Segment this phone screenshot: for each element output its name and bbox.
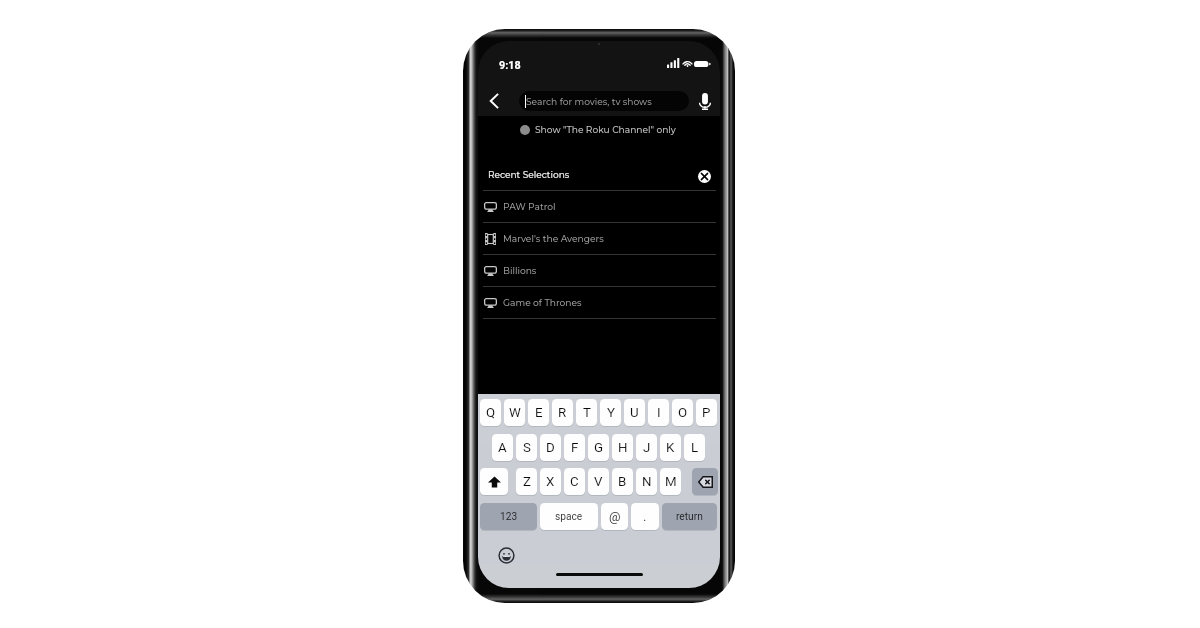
- staticText: Show "The Roku Channel" only: [535, 124, 676, 135]
- button[interactable]: M: [660, 468, 681, 495]
- staticText: Recent Selections: [488, 169, 570, 180]
- staticText: Y: [607, 405, 615, 421]
- button[interactable]: J: [636, 434, 657, 461]
- button[interactable]: L: [684, 434, 705, 461]
- button[interactable]: Marvel's the Avengers: [478, 223, 720, 254]
- staticText: 123: [500, 511, 518, 523]
- button[interactable]: O: [672, 399, 693, 426]
- button[interactable]: Back: [484, 91, 504, 111]
- button[interactable]: Shift: [480, 468, 508, 495]
- staticText: K: [666, 440, 675, 456]
- staticText: E: [535, 405, 543, 421]
- button[interactable]: @: [601, 503, 628, 530]
- button[interactable]: B: [612, 468, 633, 495]
- staticText: M: [665, 474, 677, 490]
- staticText: X: [546, 474, 555, 490]
- staticText: PAW Patrol: [503, 201, 556, 212]
- staticText: Z: [523, 474, 531, 490]
- staticText: C: [570, 474, 579, 490]
- button[interactable]: E: [528, 399, 549, 426]
- button[interactable]: U: [624, 399, 645, 426]
- staticText: V: [594, 474, 603, 490]
- staticText: T: [583, 405, 591, 421]
- button[interactable]: Z: [516, 468, 537, 495]
- button[interactable]: I: [648, 399, 669, 426]
- button[interactable]: Voice search: [695, 91, 715, 111]
- button[interactable]: 123: [480, 503, 537, 530]
- button[interactable]: V: [588, 468, 609, 495]
- button[interactable]: Billions: [478, 255, 720, 286]
- staticText: Game of Thrones: [503, 297, 582, 308]
- button[interactable]: H: [612, 434, 633, 461]
- button[interactable]: F: [564, 434, 585, 461]
- staticText: I: [657, 405, 661, 421]
- button[interactable]: .: [631, 503, 659, 530]
- button[interactable]: Q: [480, 399, 501, 426]
- button[interactable]: return: [662, 503, 717, 530]
- staticText: O: [678, 405, 688, 421]
- button[interactable]: Game of Thrones: [478, 287, 720, 318]
- button[interactable]: Show "The Roku Channel" only: [520, 124, 676, 135]
- button[interactable]: G: [588, 434, 609, 461]
- button[interactable]: PAW Patrol: [478, 191, 720, 222]
- button[interactable]: X: [540, 468, 561, 495]
- button[interactable]: space: [540, 503, 598, 530]
- staticText: P: [702, 405, 711, 421]
- staticText: Q: [486, 405, 496, 421]
- staticText: Search for movies, tv shows: [526, 96, 652, 107]
- button[interactable]: W: [504, 399, 525, 426]
- button[interactable]: Emoji keyboard: [497, 546, 515, 564]
- staticText: .: [643, 509, 647, 524]
- staticText: H: [618, 440, 628, 456]
- button[interactable]: P: [696, 399, 717, 426]
- button[interactable]: Backspace: [692, 468, 718, 495]
- staticText: 9:18: [499, 59, 521, 72]
- button[interactable]: C: [564, 468, 585, 495]
- staticText: return: [676, 511, 703, 523]
- staticText: S: [523, 440, 531, 456]
- staticText: N: [642, 474, 652, 490]
- button[interactable]: N: [636, 468, 657, 495]
- button[interactable]: Clear recent selections: [696, 168, 712, 184]
- staticText: Marvel's the Avengers: [503, 233, 604, 244]
- button[interactable]: D: [540, 434, 561, 461]
- staticText: J: [643, 440, 651, 456]
- button[interactable]: S: [516, 434, 537, 461]
- button[interactable]: T: [576, 399, 597, 426]
- staticText: L: [691, 440, 699, 456]
- staticText: W: [509, 405, 521, 421]
- button[interactable]: Y: [600, 399, 621, 426]
- staticText: B: [618, 474, 627, 490]
- button[interactable]: R: [552, 399, 573, 426]
- button[interactable]: Search for movies, tv shows: [519, 91, 689, 111]
- staticText: Billions: [503, 265, 537, 276]
- staticText: F: [571, 440, 579, 456]
- button[interactable]: A: [492, 434, 513, 461]
- staticText: U: [630, 405, 639, 421]
- staticText: @: [609, 509, 621, 524]
- staticText: R: [558, 405, 567, 421]
- button[interactable]: K: [660, 434, 681, 461]
- staticText: D: [546, 440, 555, 456]
- staticText: A: [498, 440, 507, 456]
- staticText: G: [594, 440, 604, 456]
- staticText: space: [555, 511, 583, 523]
